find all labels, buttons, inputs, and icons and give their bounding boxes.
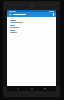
button[interactable]: Recent apps <box>42 86 48 91</box>
button[interactable]: Home <box>29 86 35 91</box>
button[interactable]: Back <box>15 86 21 91</box>
button[interactable] <box>7 29 56 34</box>
button[interactable]: Navigate up <box>7 12 13 17</box>
button[interactable] <box>7 24 56 29</box>
button[interactable] <box>7 19 56 24</box>
button[interactable]: More options <box>51 12 56 17</box>
